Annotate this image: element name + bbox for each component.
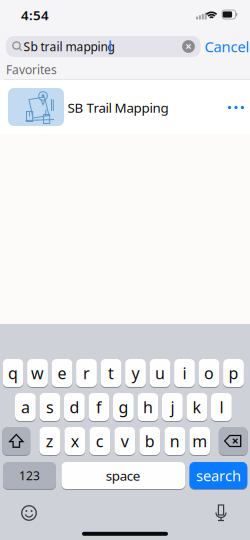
button[interactable]: 123 [3,461,56,490]
staticText: n [170,430,180,452]
button[interactable]: u [150,358,170,388]
button[interactable]: d [64,392,85,422]
button[interactable]: c [89,426,110,456]
staticText: g [118,396,128,418]
button[interactable] [14,498,44,528]
staticText: f [96,396,102,418]
staticText: c [96,430,104,452]
staticText: a [21,396,30,418]
staticText: v [121,430,129,452]
button[interactable]: v [114,426,135,456]
staticText: Favorites [6,61,57,77]
button[interactable]: m [189,426,210,456]
staticText: x [71,430,79,452]
button[interactable]: f [88,392,109,422]
staticText: d [69,396,79,418]
button[interactable]: t [101,358,121,388]
staticText: h [143,396,153,418]
staticText: p [228,362,238,384]
button[interactable]: i [174,358,195,388]
button[interactable]: k [186,392,207,422]
staticText: Sb trail mapping [23,39,114,54]
button[interactable]: z [39,426,60,456]
staticText: m [192,430,207,452]
staticText: t [108,362,114,384]
staticText: 123 [19,467,40,483]
button[interactable]: search [189,461,247,490]
staticText: i [182,362,186,384]
staticText: 4:54 [21,6,49,24]
button[interactable]: n [164,426,185,456]
button[interactable]: space [61,461,185,490]
button[interactable]: q [3,358,23,388]
button[interactable]: Cancel [204,37,249,56]
staticText: z [46,430,54,452]
staticText: w [31,362,44,384]
button[interactable] [219,426,248,456]
staticText: l [219,396,223,418]
staticText: b [145,430,155,452]
staticText: SB Trail Mapping [67,99,168,116]
staticText: q [8,362,18,384]
button[interactable]: y [125,358,146,388]
button[interactable] [206,498,236,528]
button[interactable]: e [52,358,72,388]
staticText: j [170,396,174,418]
button[interactable]: h [137,392,158,422]
button[interactable]: a [15,392,36,422]
staticText: Cancel [204,37,249,56]
button[interactable]: o [199,358,219,388]
staticText: o [204,362,214,384]
button[interactable]: Sb trail mapping [6,36,200,57]
button[interactable]: w [27,358,48,388]
button[interactable]: x [64,426,85,456]
button[interactable]: r [76,358,97,388]
button[interactable]: p [223,358,244,388]
staticText: y [131,362,139,384]
button[interactable] [2,426,30,456]
button[interactable]: l [211,392,232,422]
button[interactable]: b [139,426,160,456]
button[interactable]: g [113,392,134,422]
button[interactable]: j [162,392,183,422]
button[interactable]: s [39,392,60,422]
staticText: space [106,467,141,484]
staticText: r [83,362,90,384]
staticText: e [57,362,66,384]
button[interactable]: SB Trail Mapping [0,80,250,134]
staticText: s [46,396,54,418]
staticText: k [192,396,201,418]
button[interactable] [224,97,248,117]
staticText: search [196,466,241,485]
staticText: u [155,362,165,384]
